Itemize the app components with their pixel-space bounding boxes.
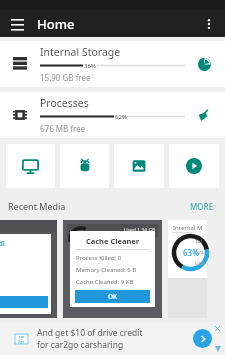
staticText: 15.90 GB free bbox=[40, 72, 91, 83]
button[interactable]: Processes bbox=[0, 92, 225, 138]
staticText: Process Killed: 0 bbox=[76, 254, 122, 262]
staticText: MORE bbox=[190, 201, 214, 212]
button[interactable]: Storage screenshot bbox=[168, 220, 207, 318]
staticText: Home bbox=[37, 15, 75, 33]
staticText: Cache Cleaner bbox=[70, 236, 155, 246]
staticText: 36% bbox=[84, 62, 96, 70]
button[interactable]: MORE bbox=[187, 199, 217, 214]
button[interactable]: Apps bbox=[60, 144, 109, 188]
button[interactable]: Cache Cleaner screenshot bbox=[63, 220, 162, 318]
staticText: Tot bbox=[195, 238, 203, 245]
button[interactable]: Screenshot 1 bbox=[0, 220, 57, 318]
button[interactable]: Advertisement: car2go carsharing bbox=[0, 322, 225, 355]
button[interactable]: More options bbox=[198, 13, 220, 35]
staticText: for car2go carsharing bbox=[37, 339, 124, 351]
button[interactable]: Images bbox=[114, 144, 164, 188]
staticText: Ava bbox=[195, 249, 204, 256]
button[interactable]: Open navigation menu bbox=[6, 13, 28, 35]
staticText: osted! bbox=[0, 239, 5, 249]
staticText: And get $10 of drive credit bbox=[37, 327, 143, 339]
button[interactable]: Close ad bbox=[214, 325, 221, 332]
staticText: OK bbox=[108, 292, 118, 301]
staticText: Internal M bbox=[173, 224, 203, 232]
button[interactable]: Open ad bbox=[193, 329, 212, 348]
button[interactable]: Screen recorder bbox=[6, 144, 55, 188]
button[interactable]: Internal Storage bbox=[0, 41, 225, 87]
button[interactable]: Videos bbox=[169, 144, 219, 188]
staticText: Use bbox=[195, 260, 204, 267]
staticText: car bbox=[19, 334, 25, 339]
staticText: 63% bbox=[183, 247, 199, 258]
staticText: Cache Cleaned: 9 KB bbox=[76, 278, 134, 286]
staticText: 676 MB free bbox=[40, 123, 86, 134]
staticText: Internal Storage bbox=[40, 45, 121, 59]
staticText: Memory Cleaned: 6 B bbox=[76, 266, 137, 274]
staticText: Recent Media bbox=[8, 200, 66, 212]
staticText: Used 1.34 GB bbox=[124, 227, 158, 234]
staticText: Processes bbox=[40, 96, 89, 110]
button[interactable]: OK bbox=[75, 290, 150, 303]
staticText: 62% bbox=[115, 113, 127, 121]
staticText: 2go bbox=[18, 339, 25, 344]
